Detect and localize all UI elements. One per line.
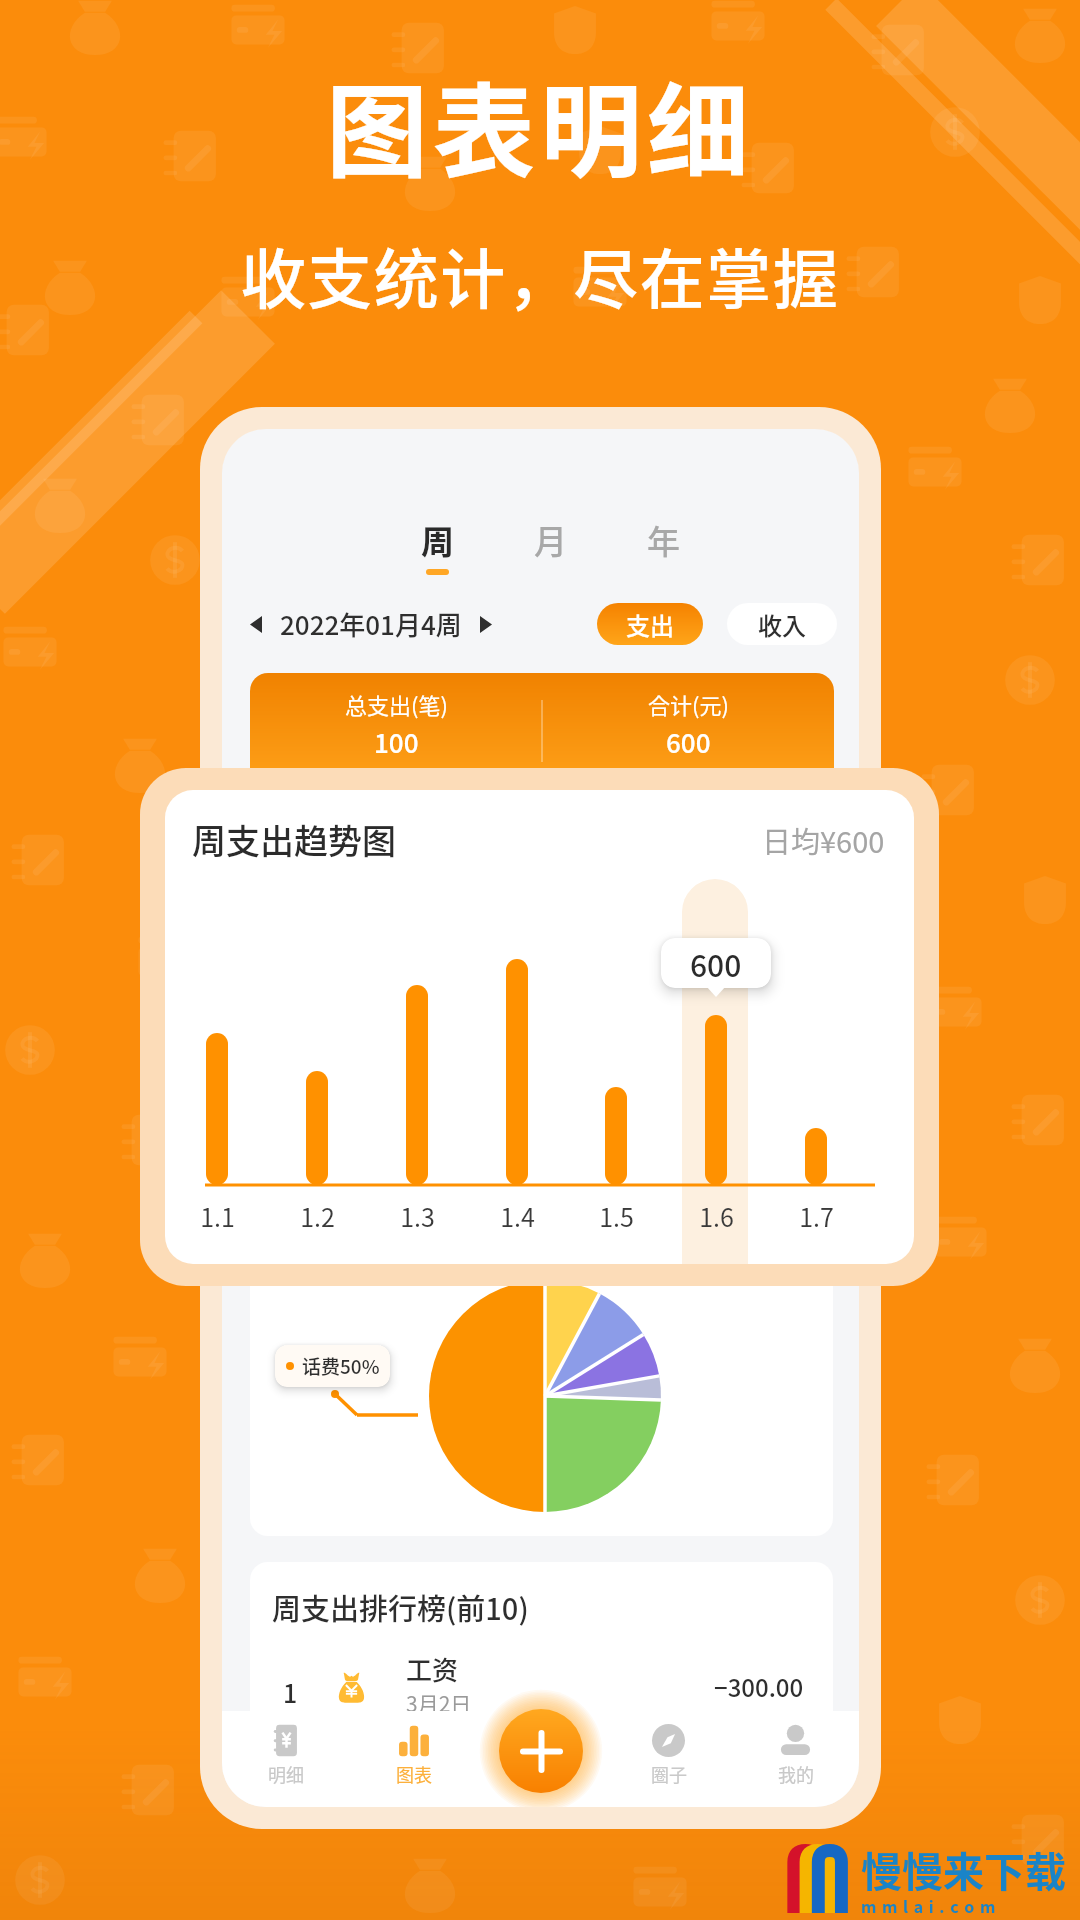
staticText: 100 xyxy=(374,723,419,761)
staticText: 工资 xyxy=(406,1650,459,1688)
staticText: 1 xyxy=(283,1674,298,1710)
button[interactable]: 支出 xyxy=(597,603,703,645)
staticText: 总支出(笔) xyxy=(345,688,448,720)
staticText: 日均¥600 xyxy=(762,819,885,861)
staticText: 圈子 xyxy=(651,1761,687,1787)
staticText: 2022年01月4周 xyxy=(280,605,462,643)
staticText: 图表 xyxy=(396,1761,432,1787)
button[interactable]: 年 xyxy=(643,516,684,575)
staticText: 周 xyxy=(421,516,454,564)
staticText: 支出 xyxy=(626,607,674,642)
staticText: 1.6 xyxy=(699,1198,734,1234)
button[interactable]: 我的 xyxy=(732,1711,859,1807)
staticText: 1.2 xyxy=(300,1198,335,1234)
staticText: 1.7 xyxy=(799,1198,834,1234)
button[interactable]: 1 xyxy=(250,1646,833,1726)
button[interactable]: 2022年01月4周 xyxy=(250,605,492,643)
staticText: 1.3 xyxy=(400,1198,435,1234)
button[interactable]: 月 xyxy=(530,516,571,575)
staticText: 合计(元) xyxy=(648,688,729,720)
staticText: 月 xyxy=(534,516,567,564)
staticText: 600 xyxy=(666,723,711,761)
staticText: 1.5 xyxy=(599,1198,634,1234)
button[interactable]: 圈子 xyxy=(605,1711,732,1807)
button[interactable]: 收入 xyxy=(727,603,837,645)
staticText: 收支统计，尽在掌握 xyxy=(0,228,1080,322)
staticText: 年 xyxy=(647,516,680,564)
button[interactable]: 图表 xyxy=(350,1711,478,1807)
staticText: 话费50% xyxy=(302,1352,380,1380)
staticText: −300.00 xyxy=(714,1669,804,1704)
button[interactable]: Add record xyxy=(499,1709,583,1793)
staticText: 周支出排行榜(前10) xyxy=(272,1586,529,1628)
staticText: 600 xyxy=(690,942,742,985)
button[interactable]: 明细 xyxy=(222,1711,350,1807)
staticText: m m l a i . c o m xyxy=(861,1894,997,1917)
staticText: 收入 xyxy=(758,607,806,642)
button[interactable]: 周 xyxy=(417,516,458,575)
staticText: 明细 xyxy=(268,1761,304,1787)
staticText: 1.4 xyxy=(500,1198,535,1234)
staticText: 我的 xyxy=(778,1761,814,1787)
staticText: 慢慢来下载 xyxy=(861,1839,1066,1898)
staticText: 1.1 xyxy=(200,1198,235,1234)
staticText: 3月2日 xyxy=(406,1688,472,1718)
staticText: 周支出趋势图 xyxy=(192,815,396,864)
staticText: 图表明细 xyxy=(0,51,1080,199)
